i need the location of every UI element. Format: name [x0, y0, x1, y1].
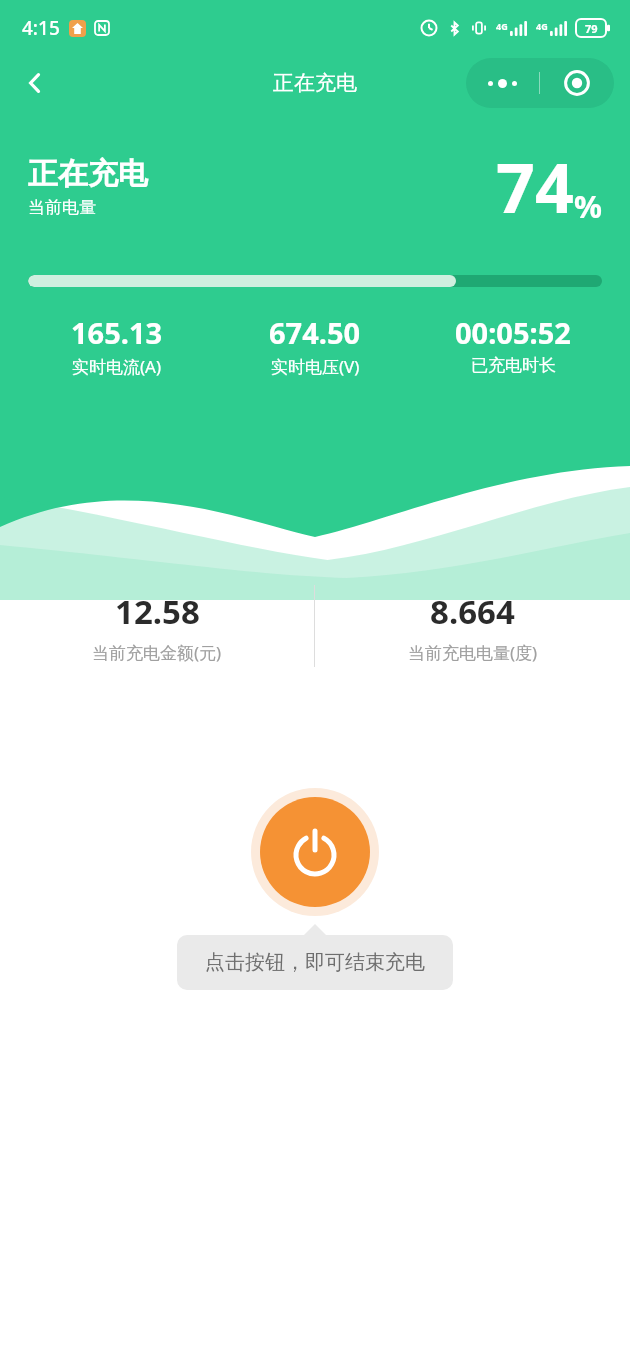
staticText: 正在充电: [273, 70, 357, 96]
staticText: 当前电量: [28, 197, 96, 218]
staticText: 已充电时长: [471, 355, 556, 376]
staticText: 实时电压(V): [271, 355, 360, 378]
button[interactable]: End charging: [251, 788, 379, 916]
staticText: 4G: [536, 20, 548, 32]
staticText: 74: [496, 140, 574, 233]
staticText: 当前充电金额(元): [92, 641, 222, 664]
staticText: 4:15: [22, 15, 60, 41]
staticText: 正在充电: [28, 155, 148, 193]
staticText: 674.50: [269, 313, 361, 352]
staticText: %: [574, 185, 602, 227]
staticText: 4G: [496, 20, 508, 32]
button[interactable]: More options: [466, 58, 539, 108]
staticText: 00:05:52: [455, 313, 571, 352]
staticText: 8.664: [430, 589, 515, 634]
staticText: 79: [585, 21, 598, 36]
staticText: 点击按钮，即可结束充电: [205, 950, 425, 975]
button[interactable]: Target: [540, 58, 614, 108]
staticText: 当前充电电量(度): [408, 641, 538, 664]
staticText: 12.58: [115, 589, 200, 634]
button[interactable]: Back: [12, 60, 58, 106]
staticText: 165.13: [71, 313, 163, 352]
staticText: 实时电流(A): [72, 355, 162, 378]
